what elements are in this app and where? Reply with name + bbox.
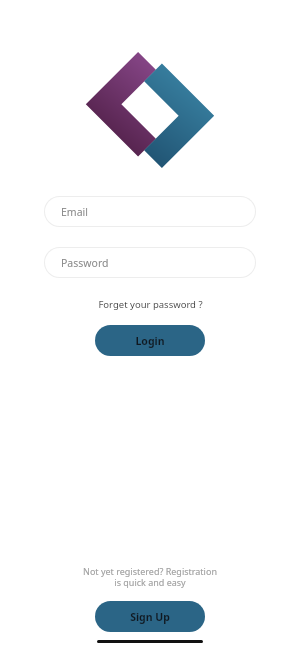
staticText: Not yet registered? Registration is quic… [40,565,260,589]
button[interactable]: Password [45,248,255,277]
button[interactable]: Email [45,197,255,226]
button[interactable]: Sign Up [95,601,205,632]
button[interactable]: Login [95,325,205,356]
staticText: Password [61,256,109,270]
button[interactable]: Forget your password ? [92,296,209,313]
staticText: Sign Up [130,610,170,624]
staticText: Email [61,205,88,219]
other: App logo [91,62,209,158]
staticText: Login [135,334,165,348]
